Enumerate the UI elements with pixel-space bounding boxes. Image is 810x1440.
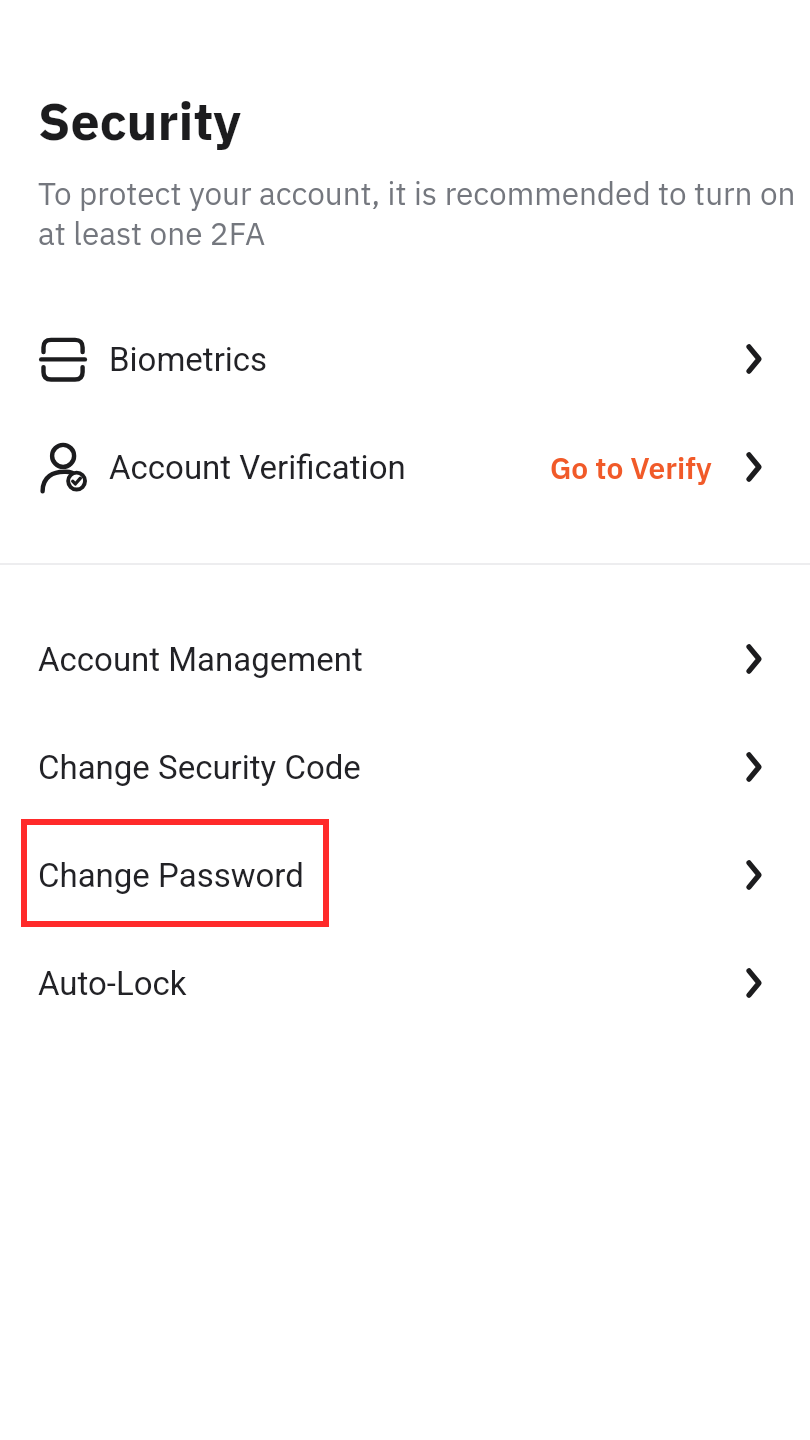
staticText: Change Security Code bbox=[38, 748, 361, 787]
other: Open bbox=[737, 342, 771, 376]
other: Open bbox=[737, 642, 771, 676]
button[interactable]: Change Security Code bbox=[0, 713, 810, 821]
button[interactable]: Account Verification bbox=[0, 413, 810, 521]
staticText: Security bbox=[38, 87, 242, 155]
staticText: Auto-Lock bbox=[38, 964, 187, 1003]
other: Open bbox=[737, 966, 771, 1000]
button[interactable]: Account Management bbox=[0, 605, 810, 713]
staticText: Go to Verify bbox=[550, 448, 712, 487]
staticText: Change Password bbox=[38, 856, 304, 895]
other: Open bbox=[737, 750, 771, 784]
staticText: To protect your account, it is recommend… bbox=[38, 173, 798, 253]
other: Open bbox=[737, 858, 771, 892]
button[interactable]: Biometrics bbox=[0, 305, 810, 413]
staticText: Account Verification bbox=[109, 448, 406, 487]
button[interactable]: Change Password bbox=[0, 821, 810, 929]
button[interactable]: Auto-Lock bbox=[0, 929, 810, 1037]
other: Open bbox=[737, 450, 771, 484]
staticText: Biometrics bbox=[109, 340, 268, 379]
staticText: Account Management bbox=[38, 640, 363, 679]
